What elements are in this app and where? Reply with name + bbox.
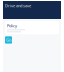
staticText: Policy [7, 23, 17, 28]
staticText: Drive and save [5, 3, 31, 8]
staticText: Go [6, 37, 11, 43]
